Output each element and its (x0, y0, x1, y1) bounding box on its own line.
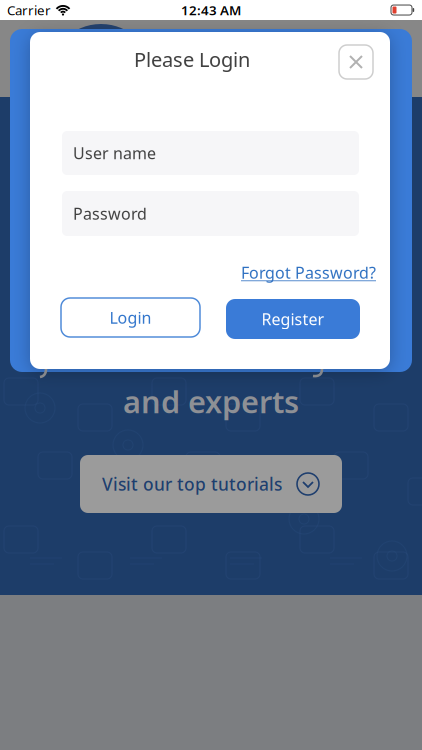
button[interactable]: User name (62, 131, 359, 175)
staticText: User name (73, 142, 156, 164)
button[interactable]: Register (226, 299, 360, 339)
staticText: Please Login (134, 46, 250, 73)
staticText: Visit our top tutorials (102, 472, 282, 495)
button[interactable]: Forgot Password? (241, 262, 376, 283)
button[interactable]: Visit our top tutorials (80, 455, 342, 513)
button[interactable]: Password (62, 191, 359, 236)
staticText: Password (73, 203, 147, 224)
staticText: 12:43 AM (181, 1, 241, 19)
staticText: Login (109, 307, 151, 328)
staticText: Carrier (7, 1, 51, 19)
staticText: and experts (123, 381, 299, 422)
button[interactable]: Close (339, 45, 373, 79)
button[interactable]: Login (61, 298, 200, 337)
staticText: Forgot Password? (241, 262, 376, 283)
staticText: Register (261, 308, 324, 330)
